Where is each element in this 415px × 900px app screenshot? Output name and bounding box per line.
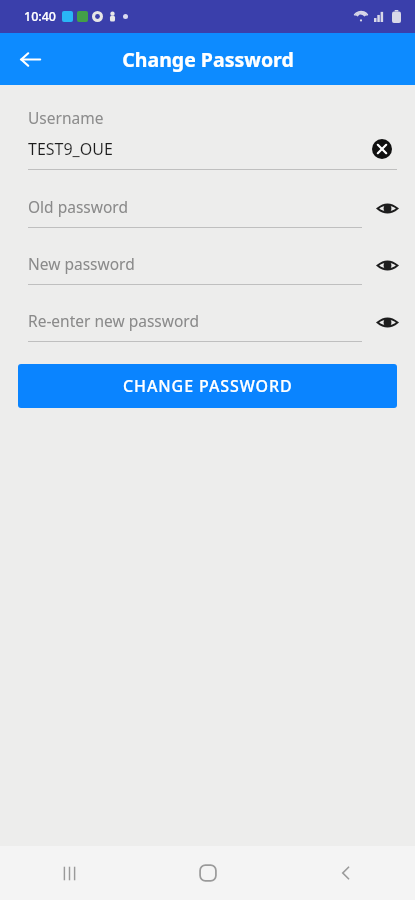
staticText: Re-enter new password [28, 310, 199, 331]
button[interactable]: Show password [372, 193, 402, 223]
staticText: Change Password [122, 46, 294, 73]
button[interactable]: Clear username [367, 134, 397, 164]
button[interactable]: Show password [372, 307, 402, 337]
button[interactable]: Home [139, 846, 277, 900]
button[interactable]: Re-enter new password [0, 310, 415, 342]
staticText: CHANGE PASSWORD [123, 375, 293, 397]
staticText: 10:40 [24, 8, 57, 25]
staticText: Old password [28, 196, 128, 217]
button[interactable]: Username [0, 107, 415, 170]
button[interactable]: CHANGE PASSWORD [18, 364, 397, 408]
staticText: TEST9_OUE [28, 138, 367, 160]
button[interactable]: Show password [372, 250, 402, 280]
button[interactable]: Recents [0, 846, 139, 900]
button[interactable]: Back [277, 846, 415, 900]
button[interactable]: Back [8, 37, 52, 81]
button[interactable]: Old password [0, 196, 415, 228]
staticText: New password [28, 253, 135, 274]
button[interactable]: New password [0, 253, 415, 285]
staticText: Username [28, 107, 104, 128]
